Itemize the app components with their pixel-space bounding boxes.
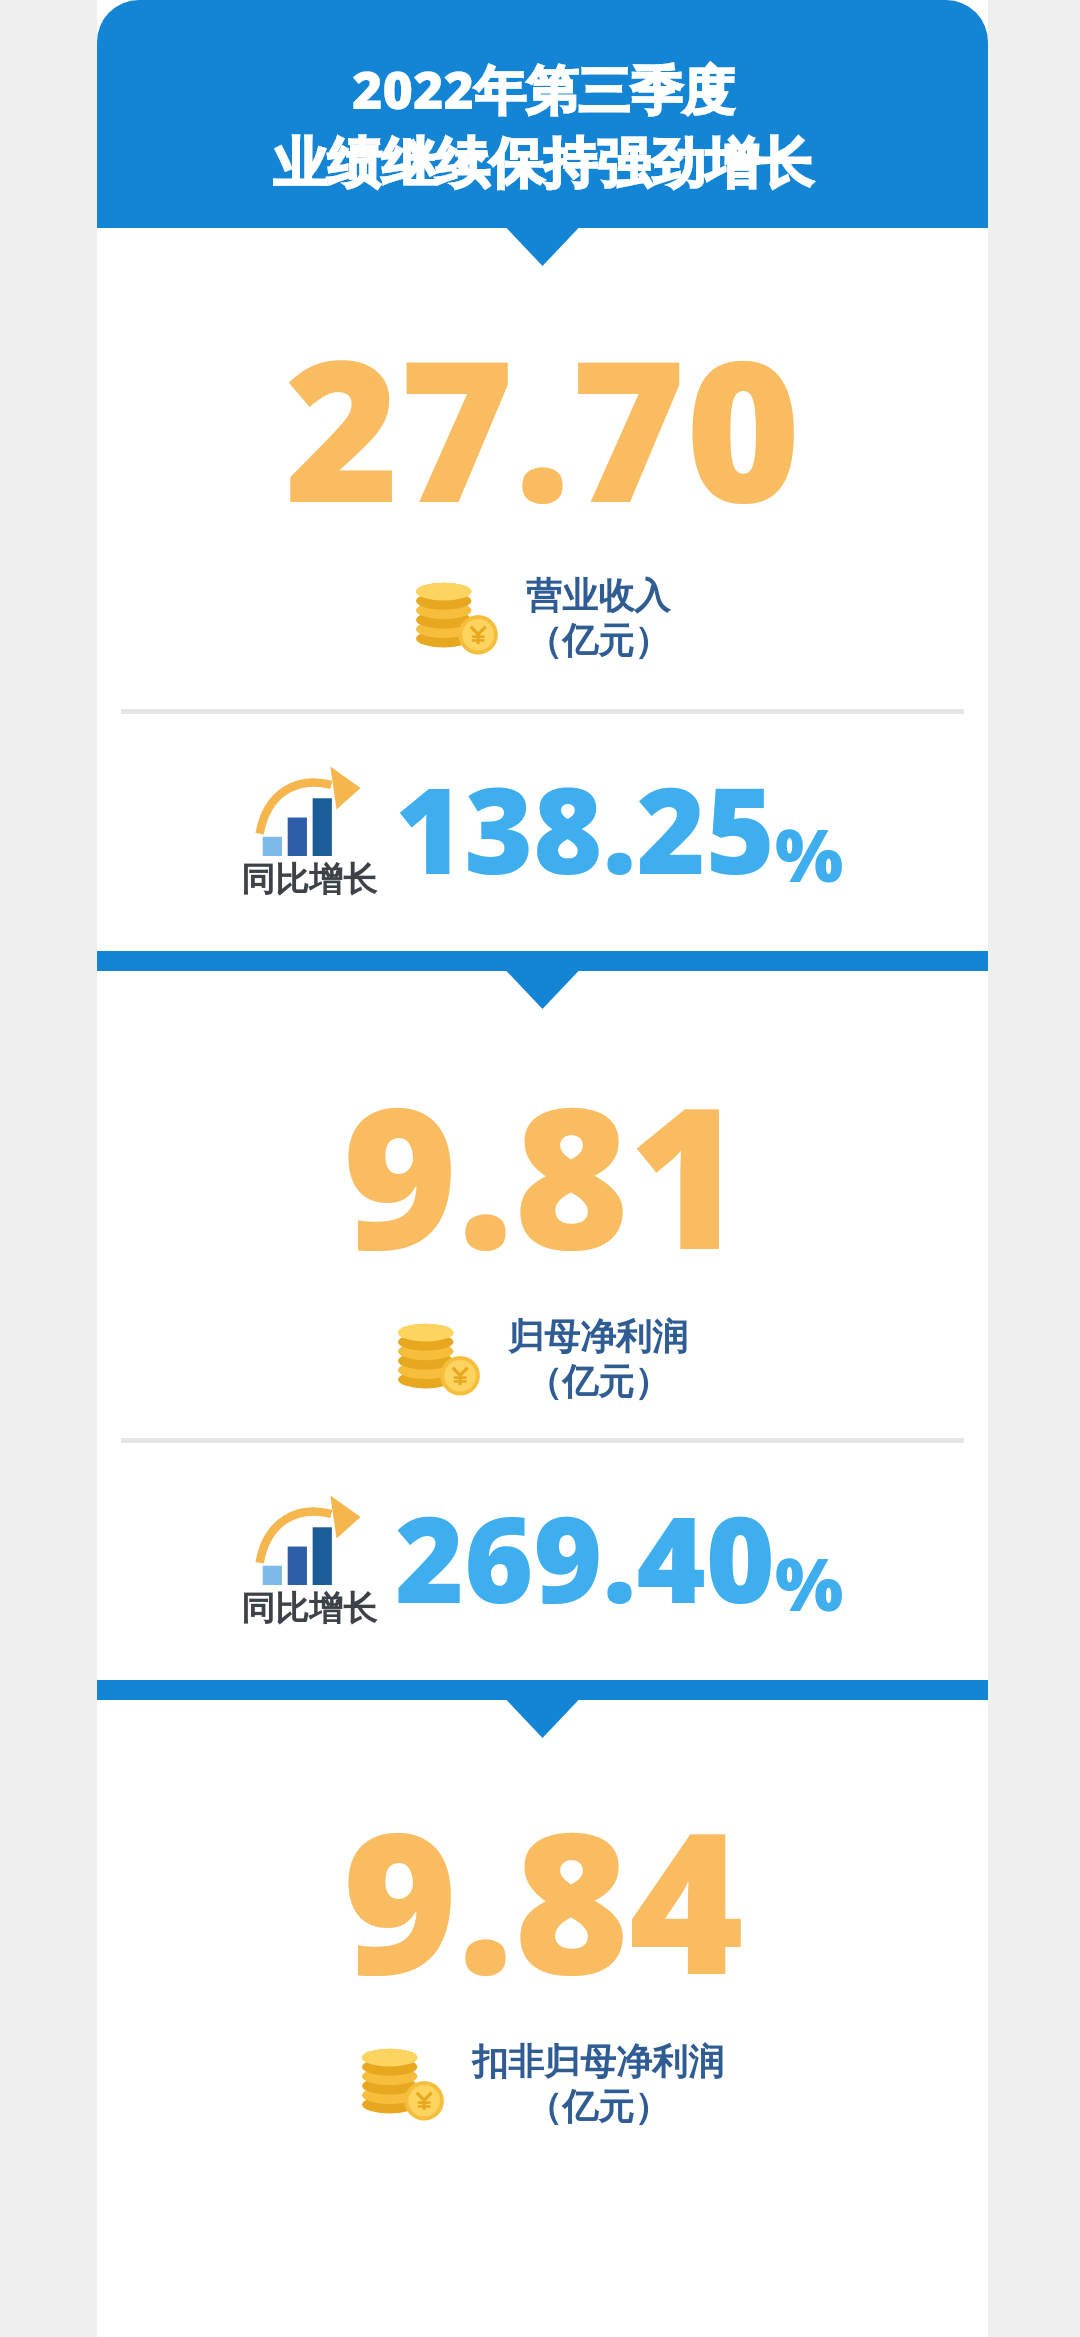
staticText: 2022年第三季度 [352, 53, 734, 124]
button[interactable]: Money [97, 1314, 988, 1404]
other: Year over year growth [257, 782, 361, 856]
button[interactable]: Year over year growth [97, 748, 988, 915]
staticText: 同比增长 [241, 1587, 377, 1630]
staticText: （亿元） [526, 618, 670, 663]
other: Year over year growth [257, 1511, 361, 1585]
staticText: 同比增长 [241, 858, 377, 901]
other: Money [398, 1317, 482, 1401]
staticText: % [775, 805, 844, 903]
staticText: （亿元） [526, 2084, 670, 2129]
staticText: （亿元） [526, 1359, 670, 1404]
button[interactable]: 2022年第三季度 [97, 0, 988, 266]
staticText: 27.70 [284, 292, 801, 559]
button[interactable]: Money [97, 573, 988, 663]
staticText: 138.25 [395, 748, 775, 909]
staticText: % [775, 1534, 844, 1632]
button[interactable]: Year over year growth [97, 1477, 988, 1644]
staticText: 归母净利润 [508, 1314, 688, 1359]
staticText: 业绩继续保持强劲增长 [273, 130, 813, 198]
other: Money [362, 2042, 446, 2126]
staticText: 营业收入 [526, 573, 670, 618]
other: Money [416, 576, 500, 660]
staticText: 9.81 [342, 1039, 744, 1306]
staticText: 269.40 [395, 1477, 775, 1638]
staticText: 扣非归母净利润 [472, 2039, 724, 2084]
staticText: 9.84 [342, 1764, 744, 2031]
button[interactable]: Money [97, 2039, 988, 2129]
